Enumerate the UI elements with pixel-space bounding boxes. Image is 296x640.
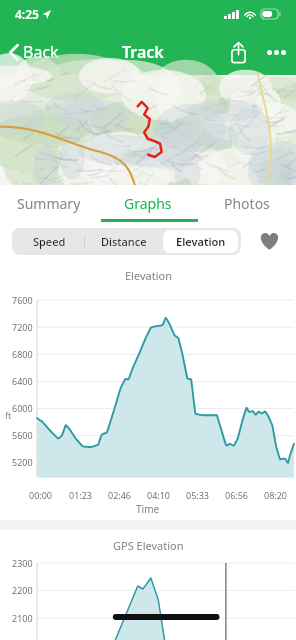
button[interactable]: Back <box>0 32 67 72</box>
staticText: GPS Elevation <box>113 538 184 553</box>
staticText: Elevation <box>176 234 226 249</box>
button[interactable]: Graphs <box>98 185 197 222</box>
staticText: 6000 <box>12 402 33 414</box>
staticText: Distance <box>101 234 147 249</box>
staticText: 7200 <box>12 321 33 333</box>
staticText: 2200 <box>12 584 33 596</box>
staticText: Elevation <box>125 268 172 283</box>
staticText: 4:25 <box>15 6 39 22</box>
staticText: Summary <box>17 194 81 213</box>
staticText: Graphs <box>124 194 172 213</box>
staticText: 5200 <box>12 456 33 468</box>
staticText: 04:10 <box>147 489 171 501</box>
staticText: Back <box>23 41 59 63</box>
button[interactable]: Favorite <box>254 226 284 256</box>
button[interactable]: Distance <box>86 230 161 253</box>
staticText: Photos <box>224 194 270 213</box>
button[interactable]: Share <box>219 33 257 71</box>
button[interactable]: Summary <box>0 185 98 222</box>
staticText: 6800 <box>12 348 33 360</box>
staticText: Speed <box>33 234 66 249</box>
staticText: 2300 <box>12 557 33 569</box>
staticText: 08:20 <box>264 489 288 501</box>
staticText: Time <box>136 502 160 516</box>
staticText: 02:46 <box>108 489 132 501</box>
staticText: 2100 <box>12 612 33 624</box>
button[interactable]: Photos <box>197 185 296 222</box>
staticText: ft <box>5 409 12 421</box>
staticText: 7600 <box>12 294 33 306</box>
button[interactable]: Speed <box>15 230 83 253</box>
staticText: 00:00 <box>29 489 53 501</box>
staticText: 05:33 <box>186 489 210 501</box>
button[interactable]: More options <box>257 33 295 71</box>
staticText: 6400 <box>12 375 33 387</box>
staticText: 5600 <box>12 429 33 441</box>
staticText: Track <box>122 41 164 63</box>
staticText: 06:56 <box>225 489 249 501</box>
button[interactable]: Elevation <box>163 230 238 253</box>
staticText: 01:23 <box>69 489 93 501</box>
